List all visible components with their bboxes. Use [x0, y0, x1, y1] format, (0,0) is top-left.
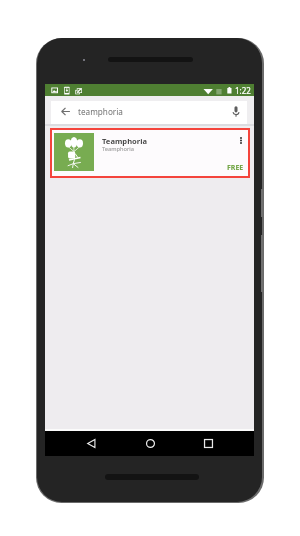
staticText: Teamphoria [102, 136, 148, 146]
button[interactable]: Recent apps [186, 431, 230, 456]
button[interactable]: More options [234, 133, 247, 147]
staticText: teamphoria [78, 106, 123, 117]
staticText: FREE [227, 163, 244, 173]
button[interactable]: Back [69, 431, 113, 456]
button[interactable]: Back [51, 101, 247, 124]
button[interactable]: Teamphoria [50, 128, 250, 178]
staticText: 1:22 [235, 85, 251, 96]
button[interactable]: Home [128, 431, 172, 456]
staticText: Teamphoria [102, 145, 134, 153]
button[interactable]: Back [55, 101, 75, 121]
button[interactable]: Voice search [226, 101, 246, 121]
